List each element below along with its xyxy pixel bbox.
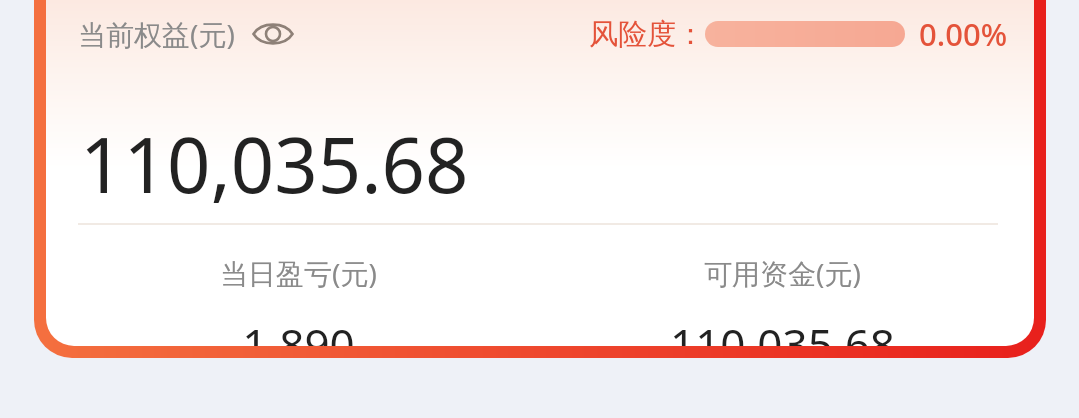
- staticText: 当前权益(元): [78, 15, 235, 53]
- button[interactable]: Toggle balance visibility: [251, 16, 295, 52]
- button[interactable]: 当前权益(元): [46, 0, 1034, 346]
- staticText: 0.00%: [919, 13, 1008, 55]
- staticText: 110,035.68: [670, 314, 895, 346]
- staticText: 风险度：: [589, 16, 705, 53]
- staticText: 1,890: [242, 314, 355, 346]
- button[interactable]: 风险度：: [589, 13, 1008, 55]
- button[interactable]: 当日盈亏(元): [56, 252, 540, 346]
- button[interactable]: 可用资金(元): [540, 252, 1024, 346]
- staticText: 当日盈亏(元): [220, 254, 377, 292]
- staticText: 可用资金(元): [704, 254, 861, 292]
- staticText: 110,035.68: [80, 112, 469, 216]
